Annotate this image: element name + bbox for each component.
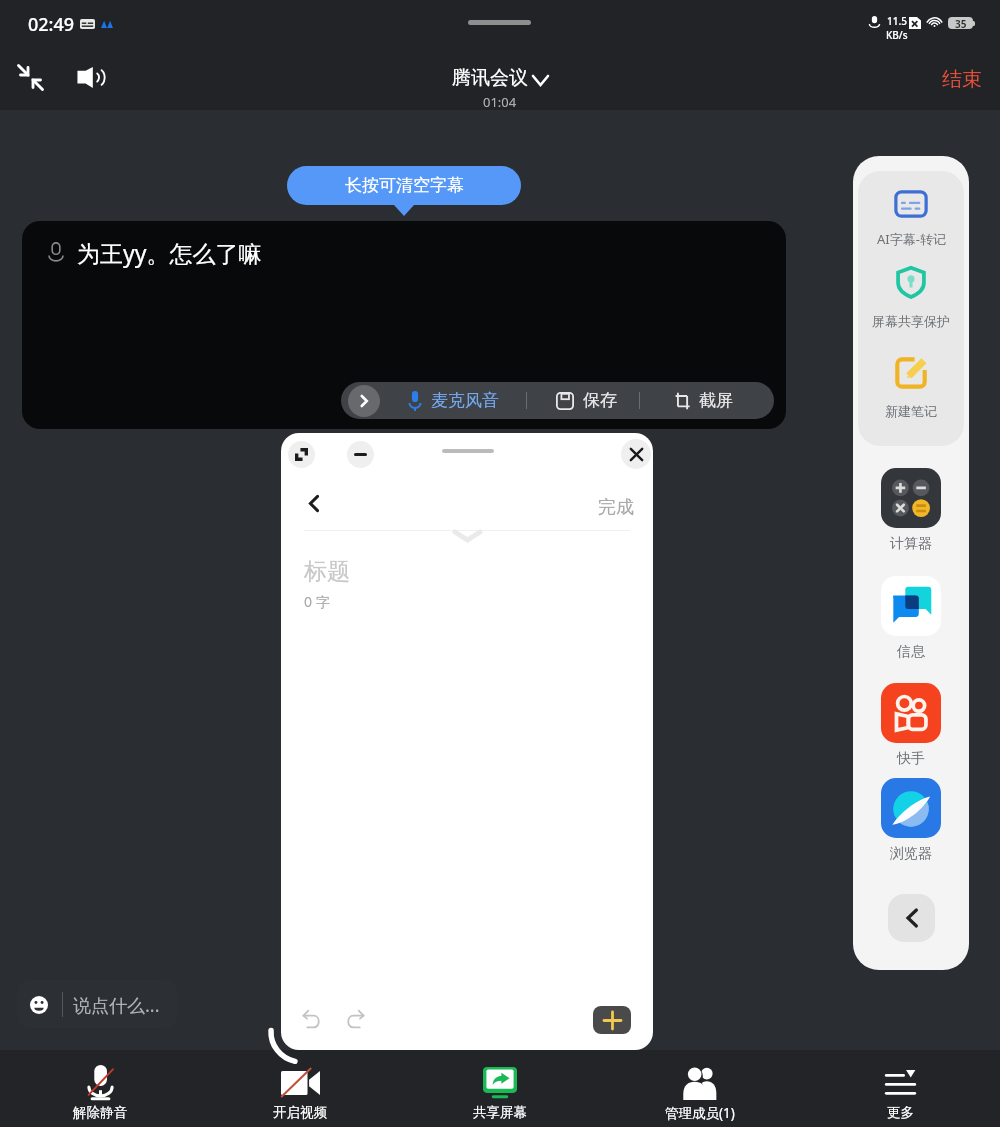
button[interactable]: Close bbox=[621, 439, 651, 469]
staticText: 长按可清空字幕 bbox=[345, 175, 464, 196]
staticText: 共享屏幕 bbox=[473, 1104, 527, 1121]
button[interactable]: 开启视频 bbox=[200, 1050, 400, 1127]
staticText: 为王yy。怎么了嘛 bbox=[77, 237, 262, 268]
button[interactable]: Fullscreen bbox=[288, 441, 315, 468]
button[interactable]: Back bbox=[888, 894, 935, 942]
button[interactable]: 更多 bbox=[800, 1050, 1000, 1127]
button[interactable]: 快手 bbox=[853, 683, 969, 768]
button[interactable]: Back bbox=[301, 490, 327, 516]
staticText: 02:49 bbox=[28, 12, 75, 37]
button[interactable]: 浏览器 bbox=[853, 778, 969, 863]
button[interactable]: Expand bbox=[348, 385, 380, 417]
button[interactable]: Redo bbox=[339, 1004, 369, 1034]
button[interactable]: 腾讯会议 bbox=[452, 66, 548, 111]
staticText: 截屏 bbox=[699, 390, 733, 411]
button[interactable]: 完成 bbox=[598, 496, 634, 519]
staticText: 管理成员(1) bbox=[665, 1104, 735, 1122]
button[interactable]: 计算器 bbox=[853, 468, 969, 553]
staticText: 完成 bbox=[598, 496, 634, 519]
staticText: 标题 bbox=[304, 557, 350, 586]
staticText: 新建笔记 bbox=[885, 403, 937, 419]
button[interactable]: AI字幕-转记 bbox=[853, 186, 969, 248]
button[interactable]: 麦克风音 bbox=[408, 390, 499, 411]
staticText: 11.5 bbox=[887, 14, 907, 28]
staticText: 01:04 bbox=[483, 93, 517, 111]
staticText: 结束 bbox=[942, 67, 982, 92]
staticText: 35 bbox=[955, 17, 967, 29]
button[interactable]: 保存 bbox=[556, 390, 617, 411]
button[interactable]: 管理成员(1) bbox=[600, 1050, 800, 1127]
button[interactable]: 说点什么... bbox=[18, 980, 177, 1028]
button[interactable]: Undo bbox=[297, 1004, 327, 1034]
staticText: 腾讯会议 bbox=[452, 66, 528, 90]
button[interactable]: 屏幕共享保护 bbox=[853, 265, 969, 329]
staticText: 计算器 bbox=[890, 535, 932, 553]
staticText: 快手 bbox=[897, 750, 925, 768]
button[interactable]: 新建笔记 bbox=[853, 355, 969, 419]
staticText: 更多 bbox=[887, 1104, 914, 1121]
staticText: 开启视频 bbox=[273, 1104, 327, 1121]
button[interactable]: 共享屏幕 bbox=[400, 1050, 600, 1127]
staticText: 解除静音 bbox=[73, 1104, 127, 1121]
button[interactable]: Speaker bbox=[69, 56, 111, 98]
staticText: 0 字 bbox=[304, 592, 330, 611]
button[interactable]: Minimize bbox=[9, 56, 51, 98]
staticText: KB/s bbox=[886, 28, 908, 42]
button[interactable]: Add bbox=[593, 1006, 631, 1034]
button[interactable]: 结束 bbox=[942, 67, 982, 92]
staticText: 浏览器 bbox=[890, 845, 932, 863]
staticText: 保存 bbox=[583, 390, 617, 411]
button[interactable]: 长按可清空字幕 bbox=[287, 166, 521, 205]
staticText: 麦克风音 bbox=[431, 390, 499, 411]
button[interactable]: 信息 bbox=[853, 576, 969, 661]
staticText: AI字幕-转记 bbox=[877, 230, 946, 248]
staticText: 屏幕共享保护 bbox=[872, 313, 950, 329]
staticText: 信息 bbox=[897, 643, 925, 661]
button[interactable]: 截屏 bbox=[672, 390, 733, 411]
button[interactable]: Minimize bbox=[347, 441, 374, 468]
staticText: 说点什么... bbox=[73, 993, 160, 1018]
button[interactable]: 解除静音 bbox=[0, 1050, 200, 1127]
